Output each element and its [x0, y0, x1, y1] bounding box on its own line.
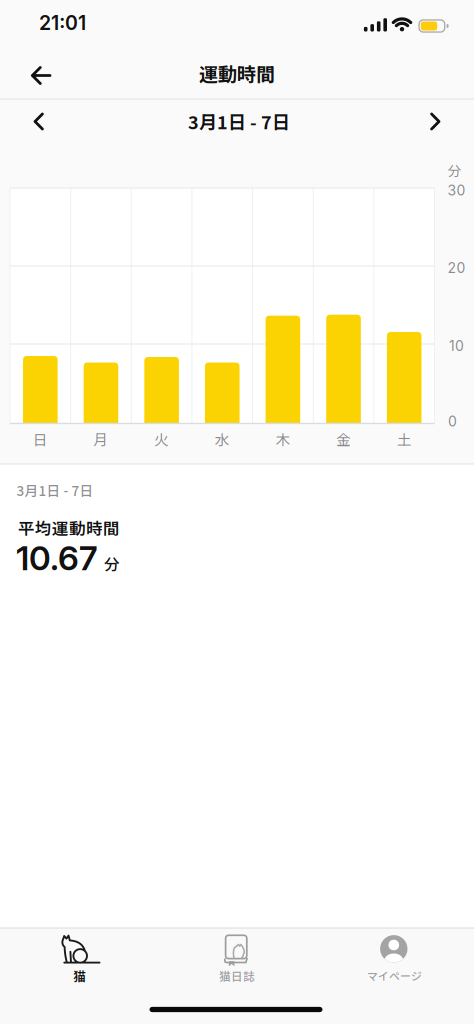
staticText: 木	[275, 428, 290, 449]
staticText: 3月1日 - 7日	[16, 480, 93, 500]
staticText: 運動時間	[199, 59, 275, 87]
staticText: 平均運動時間	[18, 516, 120, 539]
staticText: 分	[104, 552, 120, 575]
staticText: 20	[447, 259, 465, 276]
staticText: 10	[449, 337, 464, 354]
button[interactable]: Previous week	[0, 0, 474, 1024]
staticText: 3月1日 - 7日	[188, 108, 290, 135]
staticText: 10.67	[16, 538, 98, 578]
staticText: 土	[397, 428, 412, 449]
staticText: 21:01	[39, 11, 86, 35]
staticText: 水	[215, 428, 230, 449]
button[interactable]: マイページ	[316, 928, 474, 1024]
staticText: 分	[447, 160, 461, 180]
staticText: マイページ	[367, 968, 422, 983]
staticText: 金	[336, 428, 351, 449]
button[interactable]: 猫日誌	[158, 928, 316, 1024]
staticText: 火	[154, 428, 169, 449]
button[interactable]: Next week	[0, 0, 474, 1024]
staticText: 猫日誌	[219, 967, 255, 984]
staticText: 30	[447, 182, 465, 199]
button[interactable]: 猫	[0, 928, 158, 1024]
button[interactable]: Back	[0, 0, 474, 1024]
staticText: 月	[93, 428, 108, 449]
staticText: 猫	[73, 966, 86, 985]
staticText: 日	[33, 428, 48, 449]
staticText: 0	[448, 413, 457, 430]
